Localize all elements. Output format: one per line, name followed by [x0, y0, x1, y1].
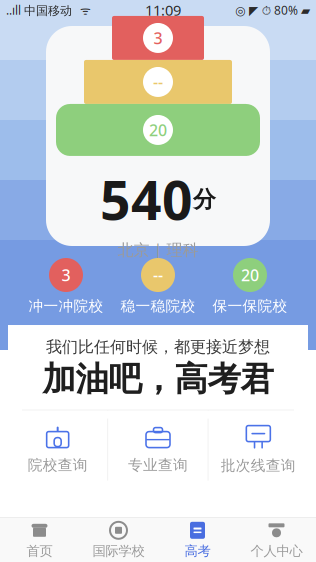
- button[interactable]: 3: [20, 258, 112, 315]
- staticText: 20: [241, 264, 259, 286]
- staticText: 专业查询: [128, 456, 188, 474]
- staticText: 稳一稳院校: [120, 297, 195, 315]
- staticText: --: [153, 71, 163, 92]
- button[interactable]: 首页: [0, 518, 79, 562]
- staticText: 保一保院校: [212, 297, 287, 315]
- staticText: 20: [149, 119, 167, 140]
- staticText: 冲一冲院校: [28, 297, 103, 315]
- button[interactable]: 院校查询: [8, 411, 107, 489]
- staticText: 分: [193, 185, 216, 213]
- staticText: 国际学校: [92, 543, 144, 559]
- button[interactable]: 国际学校: [79, 518, 158, 562]
- button[interactable]: 专业查询: [108, 411, 208, 489]
- staticText: 批次线查询: [221, 457, 296, 475]
- button[interactable]: 20: [204, 258, 296, 315]
- staticText: 首页: [26, 543, 52, 559]
- staticText: 加油吧，高考君: [42, 359, 273, 400]
- staticText: 高考: [184, 543, 210, 559]
- button[interactable]: 个人中心: [237, 518, 316, 562]
- button[interactable]: --: [112, 258, 204, 315]
- staticText: 北京 | 理科: [117, 239, 198, 260]
- staticText: 540: [100, 164, 193, 235]
- staticText: 我们比任何时候，都更接近梦想: [46, 337, 270, 357]
- staticText: 11:09: [145, 0, 181, 20]
- staticText: 院校查询: [28, 456, 88, 474]
- staticText: --: [153, 264, 163, 286]
- staticText: 3: [61, 264, 70, 286]
- button[interactable]: 批次线查询: [209, 411, 308, 489]
- staticText: ..ıll 中国移动 ᯤ: [6, 2, 91, 18]
- button[interactable]: 高考: [158, 518, 237, 562]
- staticText: 个人中心: [250, 543, 302, 559]
- staticText: ◎ ◤ ⏱ 80% ▰: [235, 2, 310, 18]
- staticText: 3: [153, 27, 162, 48]
